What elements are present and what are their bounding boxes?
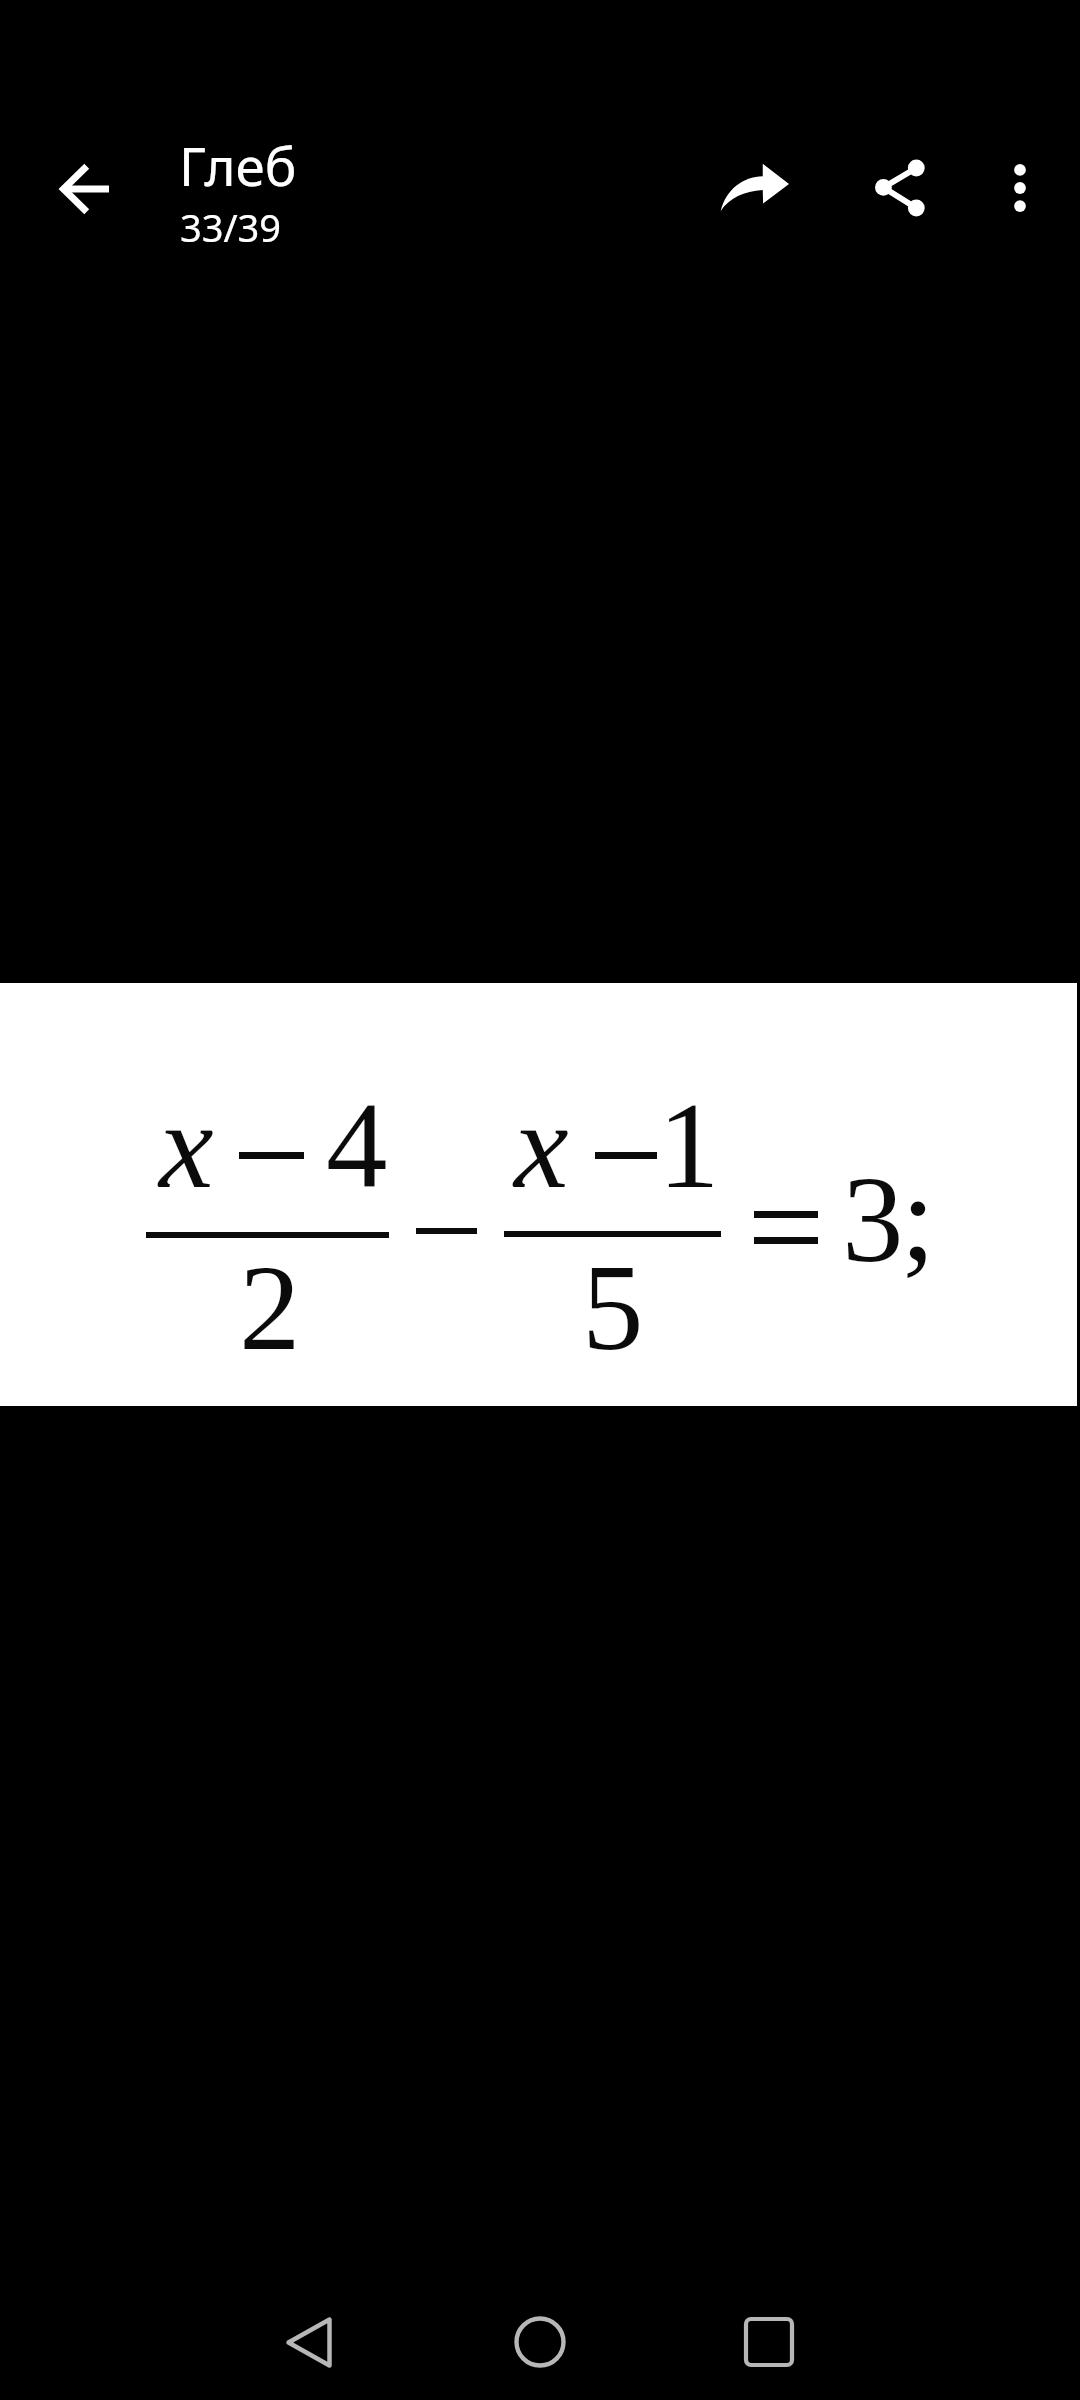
button[interactable]: Forward (694, 127, 814, 247)
staticText: 4 (326, 1077, 388, 1213)
button[interactable]: Back (24, 129, 144, 249)
button[interactable]: Share (840, 128, 960, 248)
staticText: ; (901, 1149, 936, 1285)
staticText: Глеб (179, 129, 297, 201)
button[interactable]: Recents (699, 2272, 839, 2400)
staticText: 33/39 (180, 201, 282, 253)
staticText: x (159, 1077, 214, 1213)
staticText: 2 (239, 1239, 301, 1375)
button[interactable]: x (0, 983, 1077, 1406)
staticText: 5 (582, 1239, 644, 1375)
button[interactable]: Home (470, 2272, 610, 2400)
staticText: 3 (842, 1151, 904, 1287)
button[interactable]: Back (239, 2272, 379, 2400)
staticText: x (514, 1077, 569, 1213)
button[interactable]: More options (960, 128, 1080, 248)
staticText: 1 (658, 1077, 720, 1213)
